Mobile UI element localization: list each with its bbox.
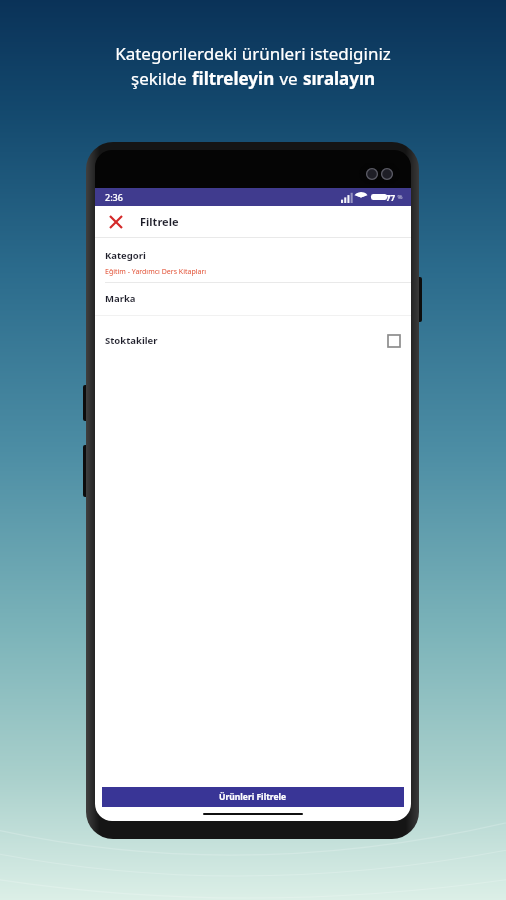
staticText: 2:36 [105,191,123,203]
staticText: 77 [386,192,396,203]
button[interactable]: Marka [95,283,411,315]
button[interactable]: Kapat [105,211,127,233]
staticText: Ürünleri Filtrele [219,791,287,803]
staticText: Kategori [105,249,146,262]
staticText: Kategorilerdeki ürünleri istediginiz [115,42,391,65]
button[interactable]: Kategori [95,238,411,282]
staticText: Stoktakiler [105,334,158,347]
staticText: şekilde [131,67,192,90]
staticText: Marka [105,292,136,305]
button[interactable]: Stoktakiler [95,330,411,351]
staticText: filtreleyin [192,67,275,90]
button[interactable]: Ürünleri Filtrele [102,787,404,807]
staticText: Eğitim - Yardımcı Ders Kitapları [105,267,207,277]
staticText: % [396,193,403,201]
staticText: ve [275,67,303,90]
staticText: sıralayın [303,67,376,90]
staticText: Filtrele [140,214,179,229]
